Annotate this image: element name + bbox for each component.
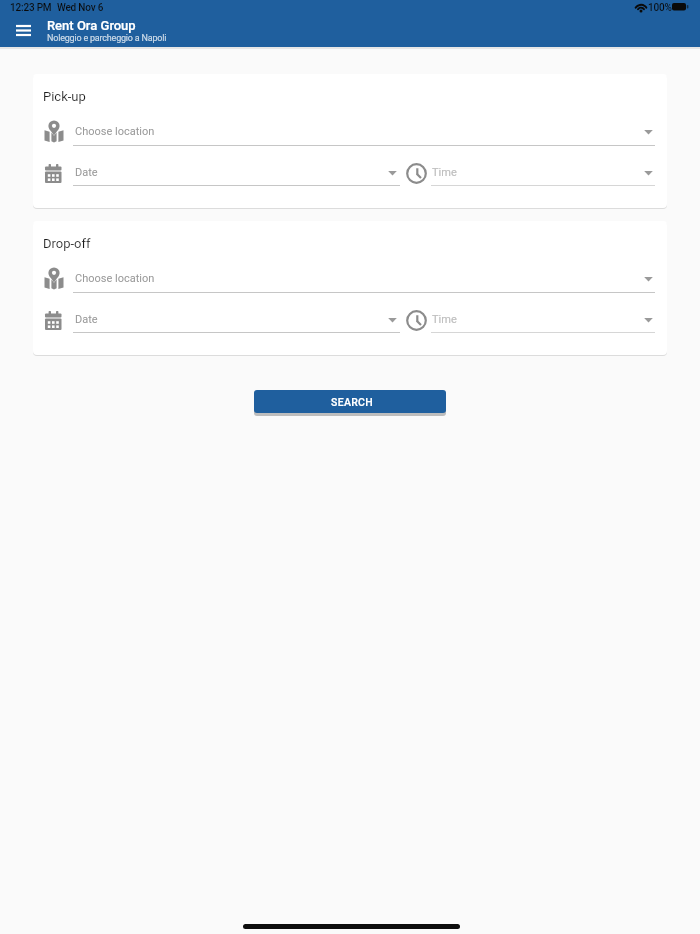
staticText: Date	[75, 313, 98, 326]
staticText: 12:23 PM	[10, 2, 52, 14]
staticText: Choose location	[75, 125, 155, 138]
staticText: Wed Nov 6	[57, 2, 104, 14]
staticText: Date	[75, 166, 98, 179]
staticText: 100%	[648, 2, 672, 14]
staticText: Choose location	[75, 272, 155, 285]
staticText: Pick-up	[43, 89, 86, 104]
staticText: Time	[432, 313, 457, 326]
button[interactable]: Choose location	[41, 263, 659, 295]
staticText: Drop-off	[43, 236, 91, 251]
button[interactable]: Date	[41, 305, 403, 333]
staticText: SEARCH	[331, 396, 373, 408]
staticText: Time	[432, 166, 457, 179]
button[interactable]: Time	[406, 305, 656, 333]
button[interactable]: SEARCH	[254, 390, 446, 413]
button[interactable]: Choose location	[41, 116, 659, 148]
button[interactable]	[8, 19, 40, 43]
staticText: Noleggio e parcheggio a Napoli	[47, 33, 167, 44]
staticText: Rent Ora Group	[47, 18, 136, 33]
button[interactable]: Date	[41, 158, 403, 186]
button[interactable]: Time	[406, 158, 656, 186]
